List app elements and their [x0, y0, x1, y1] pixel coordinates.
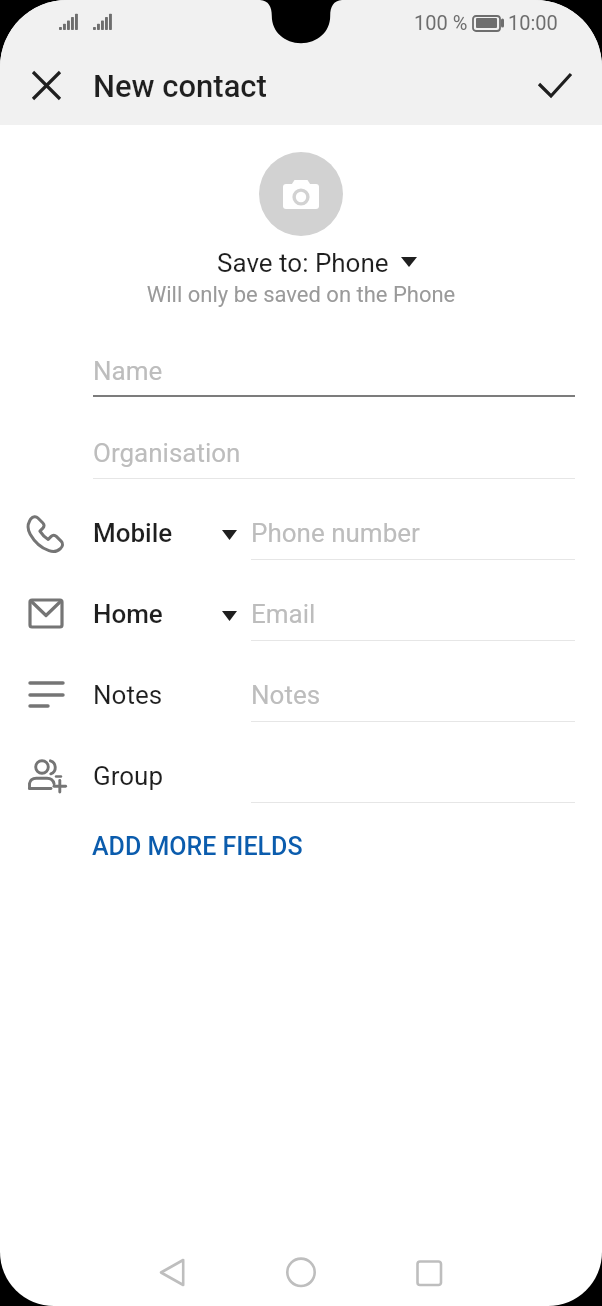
button[interactable]: Mobile [93, 509, 243, 557]
button[interactable]: ADD MORE FIELDS [92, 826, 312, 866]
staticText: Notes [93, 680, 163, 710]
staticText: Name [93, 356, 163, 386]
button[interactable]: Save [525, 55, 586, 116]
staticText: Group [93, 761, 164, 791]
staticText: ADD MORE FIELDS [92, 832, 303, 861]
button[interactable]: Home [271, 1242, 331, 1302]
button[interactable]: Recent apps [398, 1242, 458, 1302]
button[interactable]: Save to: Phone [200, 244, 420, 280]
staticText: New contact [93, 68, 267, 104]
button[interactable]: Phone number [251, 509, 575, 557]
staticText: Save to: Phone [217, 248, 389, 278]
button[interactable]: Name [93, 345, 575, 397]
staticText: 100 % [414, 11, 468, 34]
button[interactable]: Email [251, 590, 575, 638]
button[interactable]: Organisation [93, 427, 575, 479]
button[interactable]: Add photo [259, 152, 343, 236]
staticText: Email [251, 599, 316, 629]
staticText: Mobile [93, 518, 173, 548]
button[interactable]: Close [16, 55, 77, 116]
staticText: Will only be saved on the Phone [0, 282, 602, 308]
staticText: Phone number [251, 518, 420, 548]
staticText: 10:00 [508, 11, 558, 34]
button[interactable]: Notes [93, 671, 243, 719]
staticText: Notes [251, 680, 321, 710]
button[interactable]: Notes [251, 671, 575, 719]
button[interactable]: Group [93, 752, 243, 800]
staticText: Organisation [93, 438, 241, 468]
staticText: Home [93, 599, 163, 629]
button[interactable]: Back [142, 1242, 202, 1302]
button[interactable]: Home [93, 590, 243, 638]
